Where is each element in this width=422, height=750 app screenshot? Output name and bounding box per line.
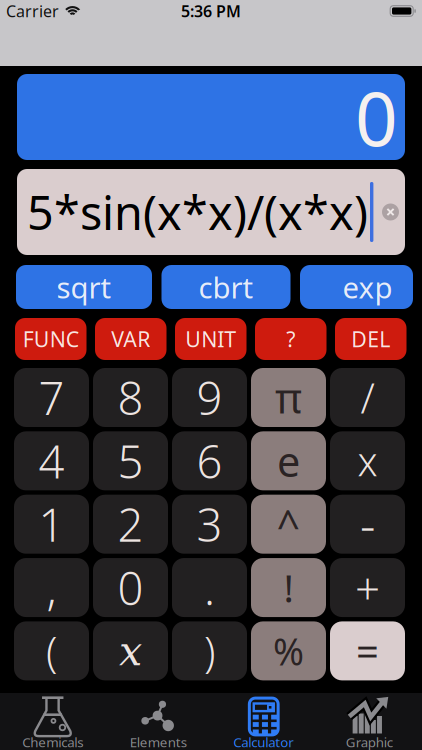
button[interactable]: 0: [93, 558, 168, 617]
button[interactable]: cbrt: [161, 265, 290, 309]
button[interactable]: 9: [172, 368, 247, 427]
staticText: .: [204, 557, 215, 618]
staticText: VAR: [111, 325, 150, 353]
staticText: 7: [38, 367, 64, 428]
staticText: Elements: [130, 733, 187, 750]
button[interactable]: UNIT: [175, 318, 246, 360]
button[interactable]: ): [172, 621, 247, 680]
button[interactable]: +: [330, 558, 405, 617]
button[interactable]: DEL: [335, 318, 406, 360]
staticText: =: [356, 624, 379, 677]
button[interactable]: π: [251, 368, 326, 427]
staticText: +: [355, 558, 380, 617]
staticText: 5:36 PM: [181, 0, 241, 22]
staticText: ?: [286, 325, 295, 353]
button[interactable]: 8: [93, 368, 168, 427]
button[interactable]: sqrt: [16, 265, 152, 309]
staticText: e: [277, 433, 300, 488]
button[interactable]: 2: [93, 495, 168, 554]
staticText: 5: [117, 431, 143, 491]
staticText: sqrt: [56, 267, 111, 306]
staticText: /: [360, 370, 374, 425]
button[interactable]: =: [330, 621, 405, 680]
staticText: -: [360, 492, 375, 556]
button[interactable]: .: [172, 558, 247, 617]
button[interactable]: (: [14, 621, 89, 680]
staticText: DEL: [351, 325, 390, 353]
button[interactable]: %: [251, 621, 326, 680]
staticText: FUNC: [23, 325, 79, 353]
staticText: 0: [355, 67, 398, 167]
button[interactable]: 3: [172, 495, 247, 554]
button[interactable]: exp: [300, 265, 413, 309]
button[interactable]: 1: [14, 495, 89, 554]
staticText: Graphic: [346, 733, 393, 750]
staticText: ^: [276, 497, 300, 552]
button[interactable]: Chemicals: [0, 693, 105, 750]
staticText: Calculator: [233, 733, 294, 750]
staticText: !: [283, 562, 293, 613]
button[interactable]: e: [251, 431, 326, 490]
staticText: %: [273, 626, 304, 676]
staticText: 5*sin(x*x)/(x*x): [27, 181, 368, 243]
staticText: (: [46, 623, 57, 678]
staticText: exp: [342, 267, 392, 306]
button[interactable]: FUNC: [15, 318, 86, 360]
button[interactable]: ^: [251, 495, 326, 554]
staticText: 0: [117, 557, 143, 618]
button[interactable]: 7: [14, 368, 89, 427]
staticText: Carrier: [6, 0, 59, 22]
staticText: ): [204, 623, 215, 678]
staticText: 8: [117, 367, 143, 428]
staticText: x: [119, 627, 142, 675]
staticText: 2: [117, 494, 143, 554]
button[interactable]: 6: [172, 431, 247, 490]
button[interactable]: /: [330, 368, 405, 427]
staticText: x: [357, 434, 377, 487]
staticText: 9: [196, 367, 222, 428]
button[interactable]: Elements: [105, 693, 211, 750]
staticText: ,: [46, 557, 56, 618]
button[interactable]: Clear: [382, 203, 399, 220]
button[interactable]: ,: [14, 558, 89, 617]
button[interactable]: x: [330, 431, 405, 490]
button[interactable]: Graphic: [316, 693, 422, 750]
staticText: 4: [38, 431, 64, 491]
staticText: UNIT: [185, 325, 236, 353]
button[interactable]: -: [330, 495, 405, 554]
staticText: π: [275, 370, 302, 425]
button[interactable]: x: [93, 621, 168, 680]
staticText: 6: [196, 431, 222, 491]
button[interactable]: VAR: [95, 318, 166, 360]
button[interactable]: ?: [255, 318, 326, 360]
button[interactable]: Calculator: [211, 693, 316, 750]
button[interactable]: !: [251, 558, 326, 617]
staticText: cbrt: [198, 267, 253, 306]
button[interactable]: 4: [14, 431, 89, 490]
staticText: Chemicals: [22, 733, 83, 750]
button[interactable]: 5: [93, 431, 168, 490]
staticText: 3: [196, 494, 222, 554]
staticText: 1: [38, 494, 64, 554]
